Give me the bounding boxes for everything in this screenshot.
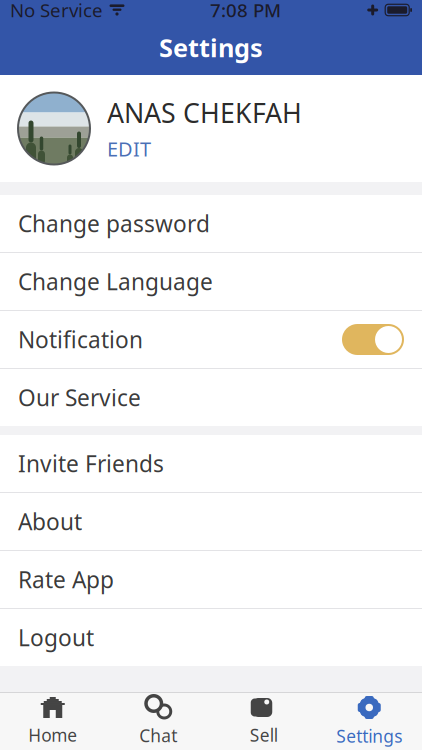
staticText: ANAS CHEKFAH [107, 95, 302, 130]
staticText: Invite Friends [18, 448, 164, 478]
button[interactable]: Invite Friends [0, 435, 422, 492]
button[interactable]: Sell [211, 693, 316, 750]
staticText: Change password [18, 208, 210, 238]
staticText: Our Service [18, 382, 141, 412]
button[interactable]: Change password [0, 195, 422, 252]
staticText: Sell [250, 723, 278, 746]
staticText: Notification [18, 324, 143, 354]
staticText: Home [28, 723, 77, 746]
button[interactable]: Our Service [0, 369, 422, 426]
staticText: Settings [159, 31, 263, 64]
button[interactable]: Notification [0, 311, 422, 368]
button[interactable]: Chat [105, 693, 211, 750]
staticText: Change Language [18, 266, 213, 296]
staticText: No Service [10, 0, 103, 22]
button[interactable]: Home [0, 693, 105, 750]
button[interactable]: About [0, 493, 422, 550]
staticText: About [18, 506, 82, 536]
staticText: Logout [18, 622, 94, 652]
button[interactable]: Change Language [0, 253, 422, 310]
button[interactable]: ANAS CHEKFAH [0, 75, 422, 182]
staticText: Settings [336, 724, 402, 747]
button[interactable]: Rate App [0, 551, 422, 608]
button[interactable]: Logout [0, 609, 422, 666]
staticText: EDIT [107, 135, 151, 162]
staticText: 7:08 PM [210, 0, 281, 22]
button[interactable]: Settings [316, 693, 422, 750]
staticText: Rate App [18, 564, 114, 594]
staticText: Chat [139, 724, 177, 747]
